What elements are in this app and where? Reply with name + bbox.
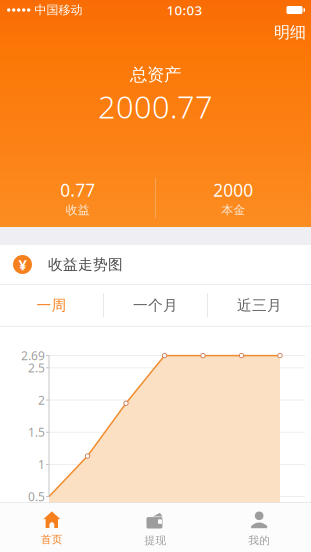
- staticText: 收益: [66, 203, 90, 217]
- staticText: 2000: [213, 179, 253, 202]
- staticText: 本金: [221, 203, 245, 217]
- staticText: 我的: [248, 534, 270, 547]
- staticText: 0.77: [60, 179, 95, 202]
- button[interactable]: 首页: [0, 503, 104, 552]
- staticText: 2.5: [28, 360, 45, 376]
- button[interactable]: 明细: [264, 18, 311, 47]
- staticText: 一个月: [133, 296, 178, 314]
- staticText: 10:03: [166, 1, 202, 19]
- staticText: 总资产: [130, 64, 181, 85]
- button[interactable]: 一周: [0, 285, 103, 326]
- button[interactable]: 提现: [104, 503, 207, 552]
- staticText: 提现: [144, 534, 166, 547]
- staticText: ¥: [18, 255, 26, 274]
- staticText: 0.5: [28, 489, 45, 504]
- button[interactable]: 近三月: [208, 285, 311, 326]
- staticText: 1.5: [28, 424, 45, 440]
- staticText: 首页: [41, 533, 63, 546]
- staticText: 近三月: [237, 296, 282, 314]
- staticText: 2.69: [21, 348, 45, 363]
- staticText: 收益走势图: [48, 255, 123, 273]
- staticText: 2000.77: [98, 86, 213, 127]
- staticText: 明细: [274, 23, 306, 42]
- staticText: 中国移动: [34, 3, 82, 17]
- button[interactable]: 我的: [207, 503, 311, 552]
- staticText: 一周: [36, 296, 66, 314]
- staticText: 2: [38, 392, 45, 408]
- button[interactable]: 一个月: [104, 285, 207, 326]
- staticText: 1: [38, 456, 45, 472]
